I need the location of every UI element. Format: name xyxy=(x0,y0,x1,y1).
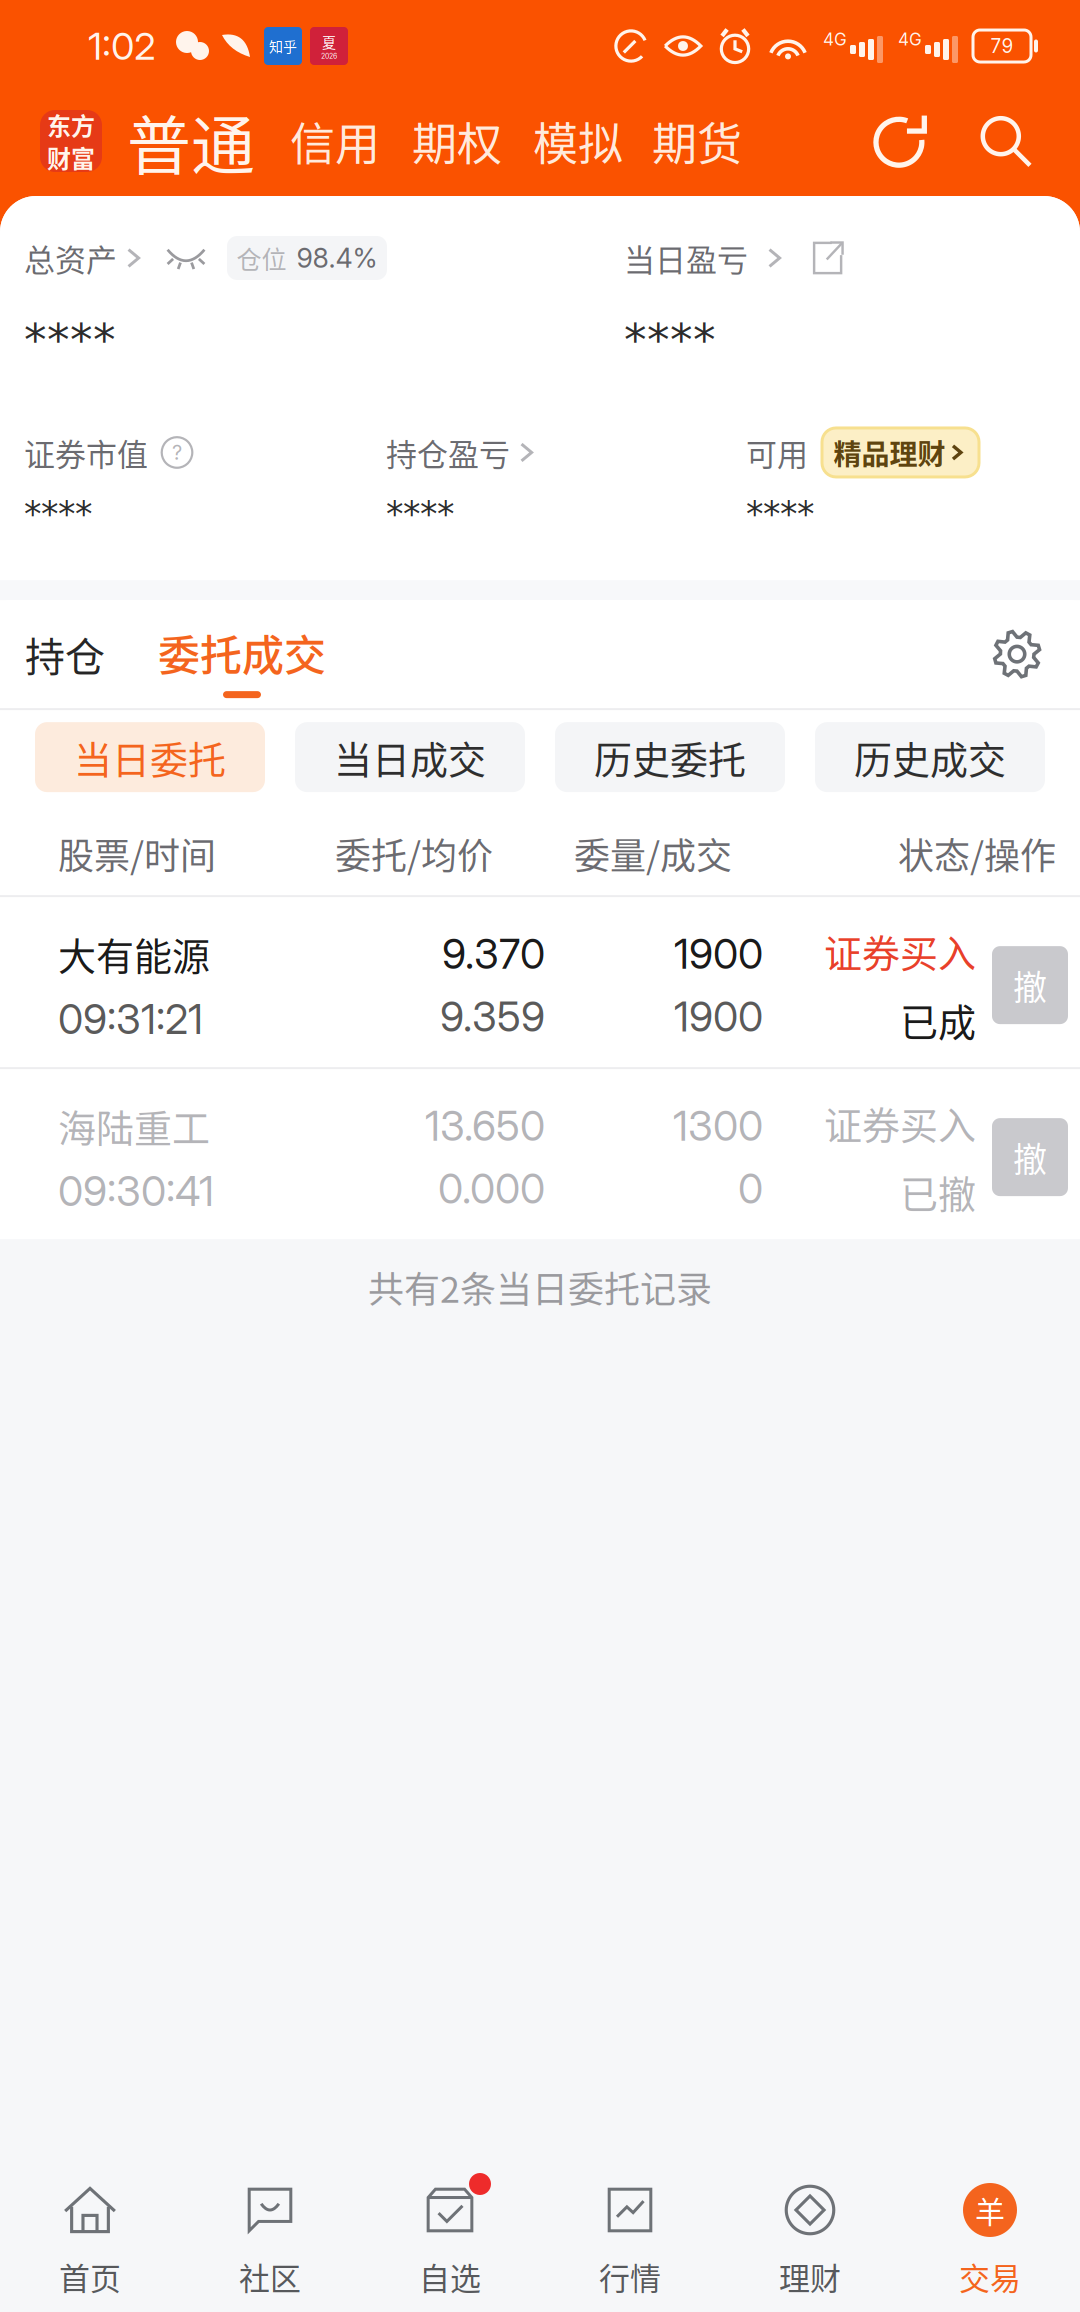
staticText: 4G xyxy=(823,29,847,50)
staticText: **** xyxy=(386,493,454,534)
staticText: 证券买入 xyxy=(824,923,976,978)
staticText: 财富 xyxy=(47,140,95,175)
button[interactable]: 行情 xyxy=(540,2160,720,2312)
staticText: **** xyxy=(24,493,92,534)
staticText: 1:02 xyxy=(88,23,156,69)
button[interactable]: 理财 xyxy=(720,2160,900,2312)
staticText: 1900 xyxy=(674,992,763,1041)
button[interactable]: 期权 xyxy=(412,108,502,174)
staticText: 持仓盈亏 xyxy=(386,430,510,475)
button[interactable]: 海陆重工 xyxy=(0,1069,1080,1239)
staticText: 委托/均价 xyxy=(335,828,493,880)
staticText: 1300 xyxy=(673,1101,763,1151)
staticText: 夏 xyxy=(322,32,336,52)
staticText: 0 xyxy=(738,1164,763,1213)
staticText: 09:31:21 xyxy=(58,994,203,1044)
button[interactable]: 刷新 xyxy=(871,110,933,172)
staticText: 羊 xyxy=(975,2188,1005,2232)
staticText: 状态/操作 xyxy=(898,828,1056,880)
button[interactable]: 历史成交 xyxy=(815,722,1045,792)
staticText: 1900 xyxy=(674,929,763,979)
staticText: 社区 xyxy=(239,2254,301,2299)
button[interactable]: 历史委托 xyxy=(555,722,785,792)
staticText: 可用 xyxy=(746,430,808,475)
button[interactable]: 搜索 xyxy=(975,111,1035,171)
staticText: 海陆重工 xyxy=(58,1098,210,1153)
button[interactable]: 社区 xyxy=(180,2160,360,2312)
staticText: 98.4% xyxy=(296,242,377,274)
button[interactable]: 首页 xyxy=(0,2160,180,2312)
staticText: **** xyxy=(24,314,116,366)
button[interactable]: 信用 xyxy=(290,108,380,174)
button[interactable]: 持仓 xyxy=(25,600,105,708)
staticText: 委量/成交 xyxy=(574,828,732,880)
staticText: 共有2条当日委托记录 xyxy=(368,1261,712,1313)
staticText: 9.359 xyxy=(440,992,545,1041)
staticText: 仓位 xyxy=(236,240,286,276)
staticText: 期权 xyxy=(412,108,502,174)
staticText: 历史委托 xyxy=(594,730,746,785)
button[interactable]: 当日成交 xyxy=(295,722,525,792)
staticText: 自选 xyxy=(419,2254,481,2299)
staticText: 0.000 xyxy=(438,1164,545,1213)
staticText: 当日委托 xyxy=(74,730,226,785)
staticText: 证券市值 xyxy=(24,430,148,475)
staticText: 首页 xyxy=(59,2254,121,2299)
staticText: 信用 xyxy=(290,108,380,174)
button[interactable]: 精品理财 xyxy=(822,428,979,477)
button[interactable]: 当日委托 xyxy=(35,722,265,792)
button[interactable]: 大有能源 xyxy=(0,897,1080,1067)
staticText: 模拟 xyxy=(533,108,623,174)
staticText: 09:30:41 xyxy=(58,1166,214,1216)
staticText: 精品理财 xyxy=(833,432,945,473)
staticText: 东方 xyxy=(47,107,95,142)
staticText: 撤 xyxy=(1013,960,1047,1010)
staticText: 撤 xyxy=(1013,1132,1047,1182)
staticText: **** xyxy=(746,493,814,534)
staticText: 当日盈亏 xyxy=(624,236,748,280)
button[interactable]: 委托成交 xyxy=(157,600,327,708)
staticText: ? xyxy=(172,440,182,465)
staticText: 当日成交 xyxy=(334,730,486,785)
staticText: 总资产 xyxy=(24,236,117,280)
staticText: 理财 xyxy=(779,2254,841,2299)
button[interactable]: 自选 xyxy=(360,2160,540,2312)
staticText: 4G xyxy=(898,29,922,50)
staticText: 大有能源 xyxy=(58,926,210,981)
staticText: 行情 xyxy=(599,2254,661,2299)
staticText: 13.650 xyxy=(425,1101,545,1151)
staticText: 股票/时间 xyxy=(58,828,216,880)
staticText: 知乎 xyxy=(269,36,297,56)
staticText: 9.370 xyxy=(442,929,545,979)
staticText: 普通 xyxy=(127,95,255,187)
staticText: 已成 xyxy=(900,992,976,1047)
staticText: 交易 xyxy=(959,2254,1021,2299)
staticText: 持仓 xyxy=(25,625,105,683)
button[interactable]: 模拟 xyxy=(533,108,623,174)
button[interactable]: 普通 xyxy=(127,95,255,187)
button[interactable]: 期货 xyxy=(652,108,742,174)
staticText: 期货 xyxy=(652,108,742,174)
staticText: 已撤 xyxy=(900,1164,976,1219)
staticText: 79 xyxy=(990,34,1013,57)
staticText: 历史成交 xyxy=(854,730,1006,785)
staticText: 委托成交 xyxy=(158,622,326,683)
button[interactable]: 设置 xyxy=(992,629,1042,679)
button[interactable]: 羊 xyxy=(900,2160,1080,2312)
staticText: **** xyxy=(624,314,716,366)
staticText: 2026 xyxy=(321,52,337,60)
staticText: 证券买入 xyxy=(824,1095,976,1150)
